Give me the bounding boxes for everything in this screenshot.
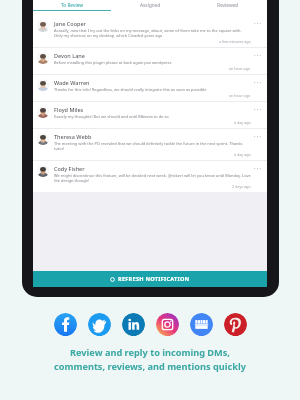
staticText: Reviewed bbox=[217, 2, 239, 8]
staticText: We might discontinue this feature, will … bbox=[54, 173, 251, 183]
button[interactable]: Jane Cooper bbox=[33, 16, 267, 47]
button[interactable]: More options bbox=[253, 20, 262, 29]
button[interactable]: Google Business Profile bbox=[190, 313, 213, 336]
staticText: a few minutes ago bbox=[219, 39, 251, 44]
button[interactable]: Pinterest bbox=[224, 313, 247, 336]
button[interactable]: More options bbox=[253, 133, 262, 142]
button[interactable]: Instagram bbox=[156, 313, 179, 336]
button[interactable]: More options bbox=[253, 106, 262, 115]
staticText: Exactly my thoughts! But we should and u… bbox=[54, 114, 169, 119]
button[interactable]: REFRESH NOTIFICATION bbox=[33, 271, 267, 287]
staticText: Wade Warren bbox=[54, 79, 90, 86]
staticText: REFRESH NOTIFICATION bbox=[118, 275, 190, 283]
button[interactable]: LinkedIn bbox=[122, 313, 145, 336]
staticText: Devon Lane bbox=[54, 52, 85, 59]
button[interactable]: Floyd Miles bbox=[33, 102, 267, 128]
staticText: Floyd Miles bbox=[54, 106, 84, 113]
staticText: a day ago bbox=[234, 152, 251, 157]
button[interactable]: Devon Lane bbox=[33, 48, 267, 74]
staticText: Jane Cooper bbox=[54, 20, 86, 27]
button[interactable]: Assigned bbox=[111, 0, 189, 11]
staticText: Review and reply to incoming DMs, commen… bbox=[54, 346, 246, 372]
button[interactable]: Facebook bbox=[54, 313, 77, 336]
staticText: an hour ago bbox=[229, 66, 251, 71]
button[interactable]: More options bbox=[253, 52, 262, 61]
staticText: Cody Fisher bbox=[54, 165, 85, 172]
staticText: Assigned bbox=[140, 2, 161, 8]
button[interactable]: Theresa Webb bbox=[33, 129, 267, 160]
button[interactable]: Twitter bbox=[88, 313, 111, 336]
staticText: Theresa Webb bbox=[54, 133, 92, 140]
staticText: The meeting with the PO revealed that we… bbox=[54, 141, 251, 151]
staticText: 2 days ago bbox=[232, 184, 251, 189]
staticText: an hour ago bbox=[229, 93, 251, 98]
button[interactable]: More options bbox=[253, 165, 262, 174]
button[interactable]: Reviewed bbox=[189, 0, 267, 11]
staticText: Before installing this plugin please at … bbox=[54, 60, 172, 65]
button[interactable]: Wade Warren bbox=[33, 75, 267, 101]
staticText: To Review bbox=[61, 2, 84, 8]
button[interactable]: More options bbox=[253, 79, 262, 88]
button[interactable]: Cody Fisher bbox=[33, 161, 267, 192]
staticText: a day ago bbox=[234, 120, 251, 125]
staticText: Actually, now that I try out the links o… bbox=[54, 28, 251, 38]
staticText: Thanks for this info! Regardless, we sho… bbox=[54, 87, 207, 92]
button[interactable]: To Review bbox=[33, 0, 111, 11]
